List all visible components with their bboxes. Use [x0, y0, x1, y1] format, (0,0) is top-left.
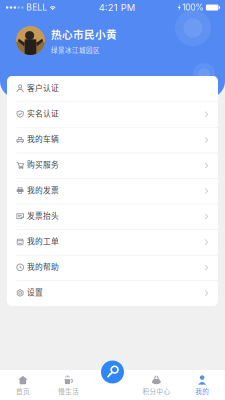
button[interactable]: 我的帮助	[7, 255, 218, 280]
button[interactable]: 设置	[7, 280, 218, 306]
button[interactable]: 慢生活	[46, 370, 92, 400]
staticText: 慢生活	[58, 386, 79, 396]
staticText: 我的帮助	[27, 261, 59, 272]
staticText: 4:21 PM	[99, 2, 135, 13]
staticText: 我的工单	[27, 235, 59, 246]
staticText: 绿景冰江城园区	[51, 45, 100, 55]
button[interactable]: 发票抬头	[7, 204, 218, 229]
button[interactable]: 我的	[179, 370, 225, 400]
staticText: 实名认证	[27, 107, 59, 119]
staticText: 发票抬头	[27, 210, 59, 221]
button[interactable]: 首页	[0, 370, 46, 400]
staticText: 我的	[195, 386, 209, 396]
staticText: BELL	[26, 2, 47, 13]
staticText: 首页	[16, 386, 30, 396]
button[interactable]: 客户认证	[7, 76, 218, 102]
staticText: 我的车辆	[27, 133, 59, 144]
button[interactable]: 扫码开门	[101, 360, 124, 383]
button[interactable]: 我的工单	[7, 229, 218, 255]
button[interactable]: 实名认证	[7, 101, 218, 127]
staticText: 我的发票	[27, 184, 59, 195]
staticText: 购买服务	[27, 159, 59, 170]
staticText: 客户认证	[27, 82, 59, 93]
button[interactable]: 积分中心	[133, 370, 179, 400]
button[interactable]: 我的发票	[7, 178, 218, 204]
staticText: 积分中心	[142, 386, 170, 396]
button[interactable]: 购买服务	[7, 153, 218, 178]
staticText: 设置	[27, 286, 43, 298]
staticText: 热心市民小黄	[51, 26, 117, 42]
staticText: 100%	[182, 2, 203, 13]
button[interactable]: 我的车辆	[7, 127, 218, 153]
